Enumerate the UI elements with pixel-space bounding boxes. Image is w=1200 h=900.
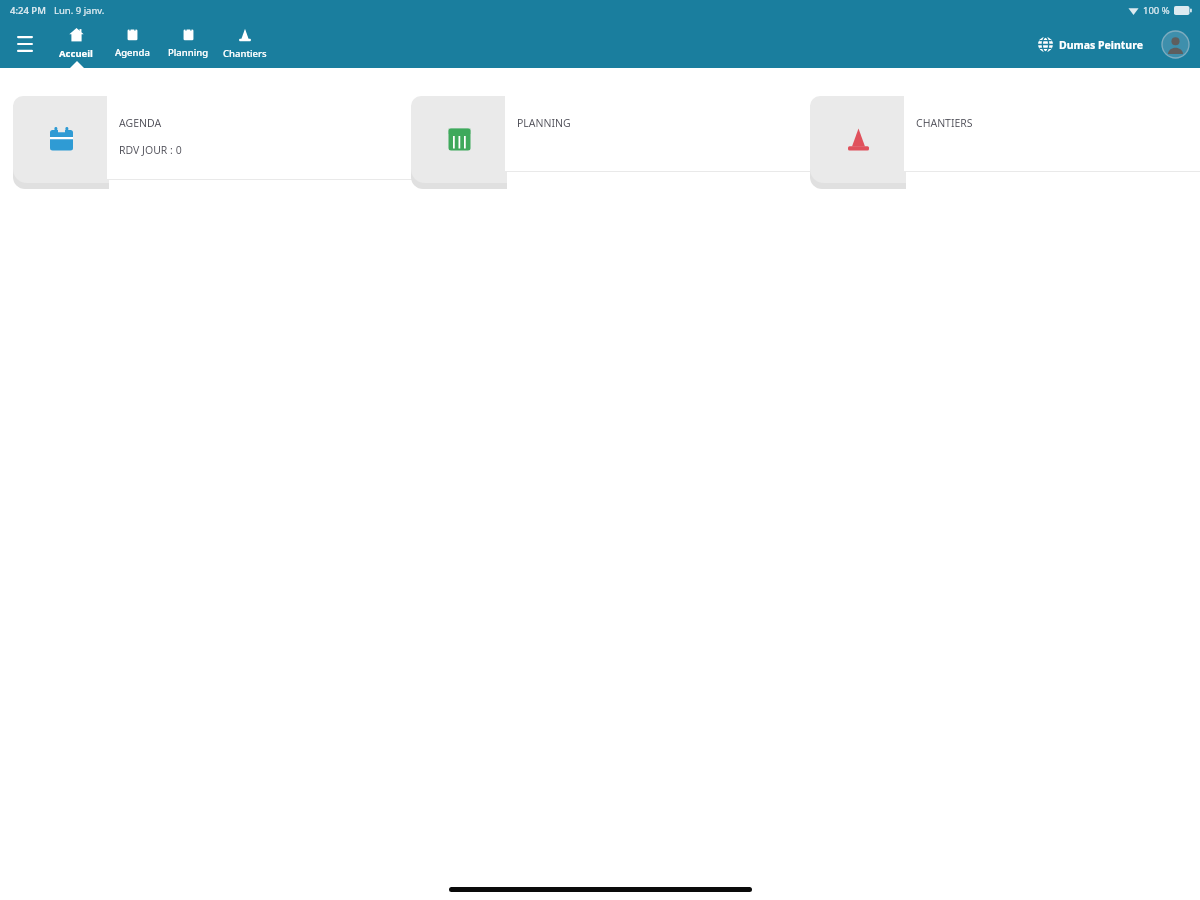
button[interactable]: Menu xyxy=(10,29,40,59)
button[interactable]: Planning xyxy=(160,20,216,68)
staticText: AGENDA xyxy=(119,116,162,130)
staticText: 4:24 PM xyxy=(10,4,46,17)
staticText: Agenda xyxy=(115,46,150,59)
staticText: Chantiers xyxy=(223,47,267,60)
button[interactable]: CHANTIERS xyxy=(810,96,1187,190)
button[interactable]: Chantiers xyxy=(216,20,274,68)
staticText: PLANNING xyxy=(517,116,571,130)
button[interactable]: AGENDA xyxy=(13,96,389,190)
staticText: Lun. 9 janv. xyxy=(54,4,105,17)
button[interactable]: PLANNING xyxy=(411,96,788,190)
button[interactable]: Dumas Peinture xyxy=(1035,33,1146,56)
staticText: Dumas Peinture xyxy=(1059,38,1143,52)
staticText: Planning xyxy=(168,46,209,59)
button[interactable]: Profile xyxy=(1160,29,1190,59)
staticText: CHANTIERS xyxy=(916,116,973,130)
button[interactable]: Agenda xyxy=(104,20,160,68)
staticText: RDV JOUR : 0 xyxy=(119,143,182,157)
staticText: 100 % xyxy=(1143,4,1170,17)
staticText: Accueil xyxy=(59,47,93,60)
button[interactable]: Accueil xyxy=(48,20,104,68)
